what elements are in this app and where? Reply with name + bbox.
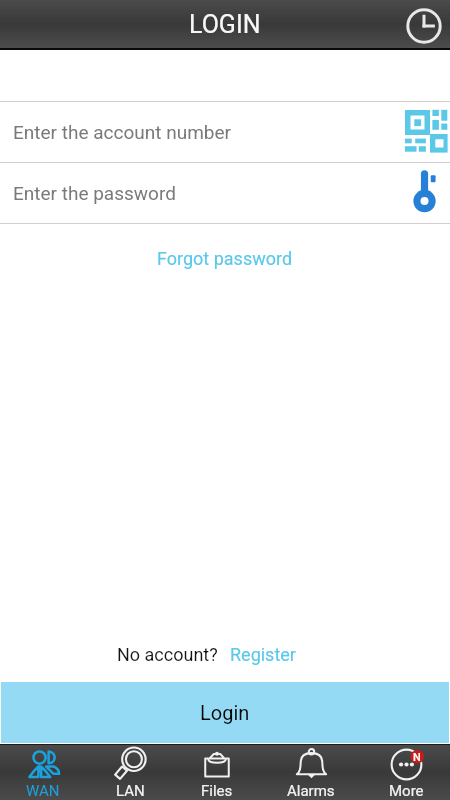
button[interactable]: Show password xyxy=(399,166,450,218)
staticText: LAN xyxy=(116,782,145,800)
button[interactable]: Register xyxy=(218,640,296,669)
button[interactable]: Files xyxy=(180,744,270,800)
staticText: Forgot password xyxy=(157,248,293,269)
button[interactable]: WAN xyxy=(0,744,90,800)
staticText: Login xyxy=(200,701,250,724)
button[interactable]: Login xyxy=(1,682,449,743)
button[interactable]: LAN xyxy=(90,744,180,800)
button[interactable]: Alarms xyxy=(270,744,360,800)
button[interactable]: N xyxy=(360,744,450,800)
staticText: LOGIN xyxy=(189,10,261,39)
button[interactable]: Clock xyxy=(403,5,445,47)
staticText: More xyxy=(389,782,424,800)
button[interactable]: Enter the password xyxy=(0,163,450,223)
button[interactable]: Scan QR code xyxy=(400,105,450,157)
staticText: Files xyxy=(201,782,233,800)
staticText: Alarms xyxy=(287,782,335,800)
button[interactable]: Forgot password xyxy=(147,243,303,274)
staticText: Enter the account number xyxy=(13,121,231,143)
staticText: Register xyxy=(230,644,296,665)
staticText: N xyxy=(413,751,421,763)
staticText: No account? xyxy=(117,644,218,665)
staticText: WAN xyxy=(26,782,60,800)
staticText: Enter the password xyxy=(13,182,176,204)
button[interactable]: Enter the account number xyxy=(0,102,450,162)
